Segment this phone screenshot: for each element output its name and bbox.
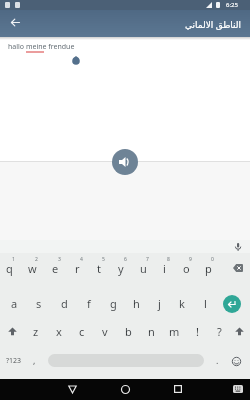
staticText: p [205,261,212,276]
button[interactable]: o [175,258,197,278]
staticText: 7 [146,256,149,263]
staticText: r [75,261,80,276]
button[interactable]: u [132,258,154,278]
staticText: s [36,296,42,311]
button[interactable]: h [125,293,147,313]
button[interactable]: w [21,258,43,278]
button[interactable]: q [0,258,20,278]
button[interactable]: r [66,258,88,278]
button[interactable] [112,149,138,175]
staticText: 6:25 [226,1,238,9]
staticText: h [133,296,140,311]
button[interactable] [223,295,241,313]
staticText: . [216,354,219,366]
staticText: , [33,354,36,366]
staticText: hallo meine frendue [8,42,75,52]
button[interactable]: s [28,293,50,313]
button[interactable]: n [140,321,162,341]
staticText: v [102,324,108,339]
staticText: ? [217,324,222,339]
button[interactable] [229,259,247,277]
button[interactable]: , [23,350,45,370]
staticText: z [33,324,39,339]
staticText: 3 [58,256,61,263]
button[interactable] [230,381,246,397]
staticText: 9 [189,256,192,263]
staticText: j [158,296,161,311]
button[interactable] [234,243,242,251]
staticText: c [79,324,85,339]
button[interactable]: a [3,293,25,313]
staticText: b [125,324,132,339]
button[interactable]: b [117,321,139,341]
button[interactable] [168,379,188,399]
button[interactable]: m [163,321,185,341]
button[interactable]: e [44,258,66,278]
button[interactable]: y [110,258,132,278]
button[interactable]: ?123 [2,351,26,371]
staticText: 5 [102,256,105,263]
button[interactable]: k [171,293,193,313]
staticText: 8 [167,256,170,263]
button[interactable]: i [153,258,175,278]
staticText: i [163,261,166,276]
staticText: 6 [124,256,127,263]
staticText: 0 [211,256,214,263]
button[interactable] [229,321,249,341]
button[interactable]: . [206,350,228,370]
staticText: الناطق الالماني [185,18,242,30]
button[interactable]: z [25,321,47,341]
button[interactable] [115,379,135,399]
staticText: 4 [80,256,83,263]
button[interactable]: p [197,258,219,278]
button[interactable]: f [78,293,100,313]
staticText: l [204,296,207,311]
staticText: ?123 [6,356,22,366]
button[interactable]: v [94,321,116,341]
button[interactable]: d [53,293,75,313]
staticText: 2 [35,256,38,263]
staticText: f [87,296,91,311]
button[interactable]: ! [186,321,208,341]
staticText: g [110,296,117,311]
staticText: 1 [12,256,15,263]
button[interactable]: ? [208,321,230,341]
staticText: a [11,296,18,311]
button[interactable]: g [102,293,124,313]
staticText: x [56,324,62,339]
button[interactable]: l [194,293,216,313]
staticText: u [140,261,147,276]
staticText: y [118,261,124,276]
staticText: n [148,324,155,339]
staticText: ! [196,324,199,339]
staticText: d [61,296,68,311]
button[interactable]: t [88,258,110,278]
staticText: k [179,296,185,311]
staticText: t [97,261,101,276]
staticText: e [52,261,59,276]
button[interactable]: j [148,293,170,313]
button[interactable] [226,351,246,371]
button[interactable] [2,321,22,341]
button[interactable] [7,14,24,31]
button[interactable]: x [48,321,70,341]
staticText: o [183,261,190,276]
button[interactable]: c [71,321,93,341]
button[interactable] [62,379,82,399]
staticText: m [169,324,180,339]
staticText: w [28,261,37,276]
staticText: q [6,261,13,276]
